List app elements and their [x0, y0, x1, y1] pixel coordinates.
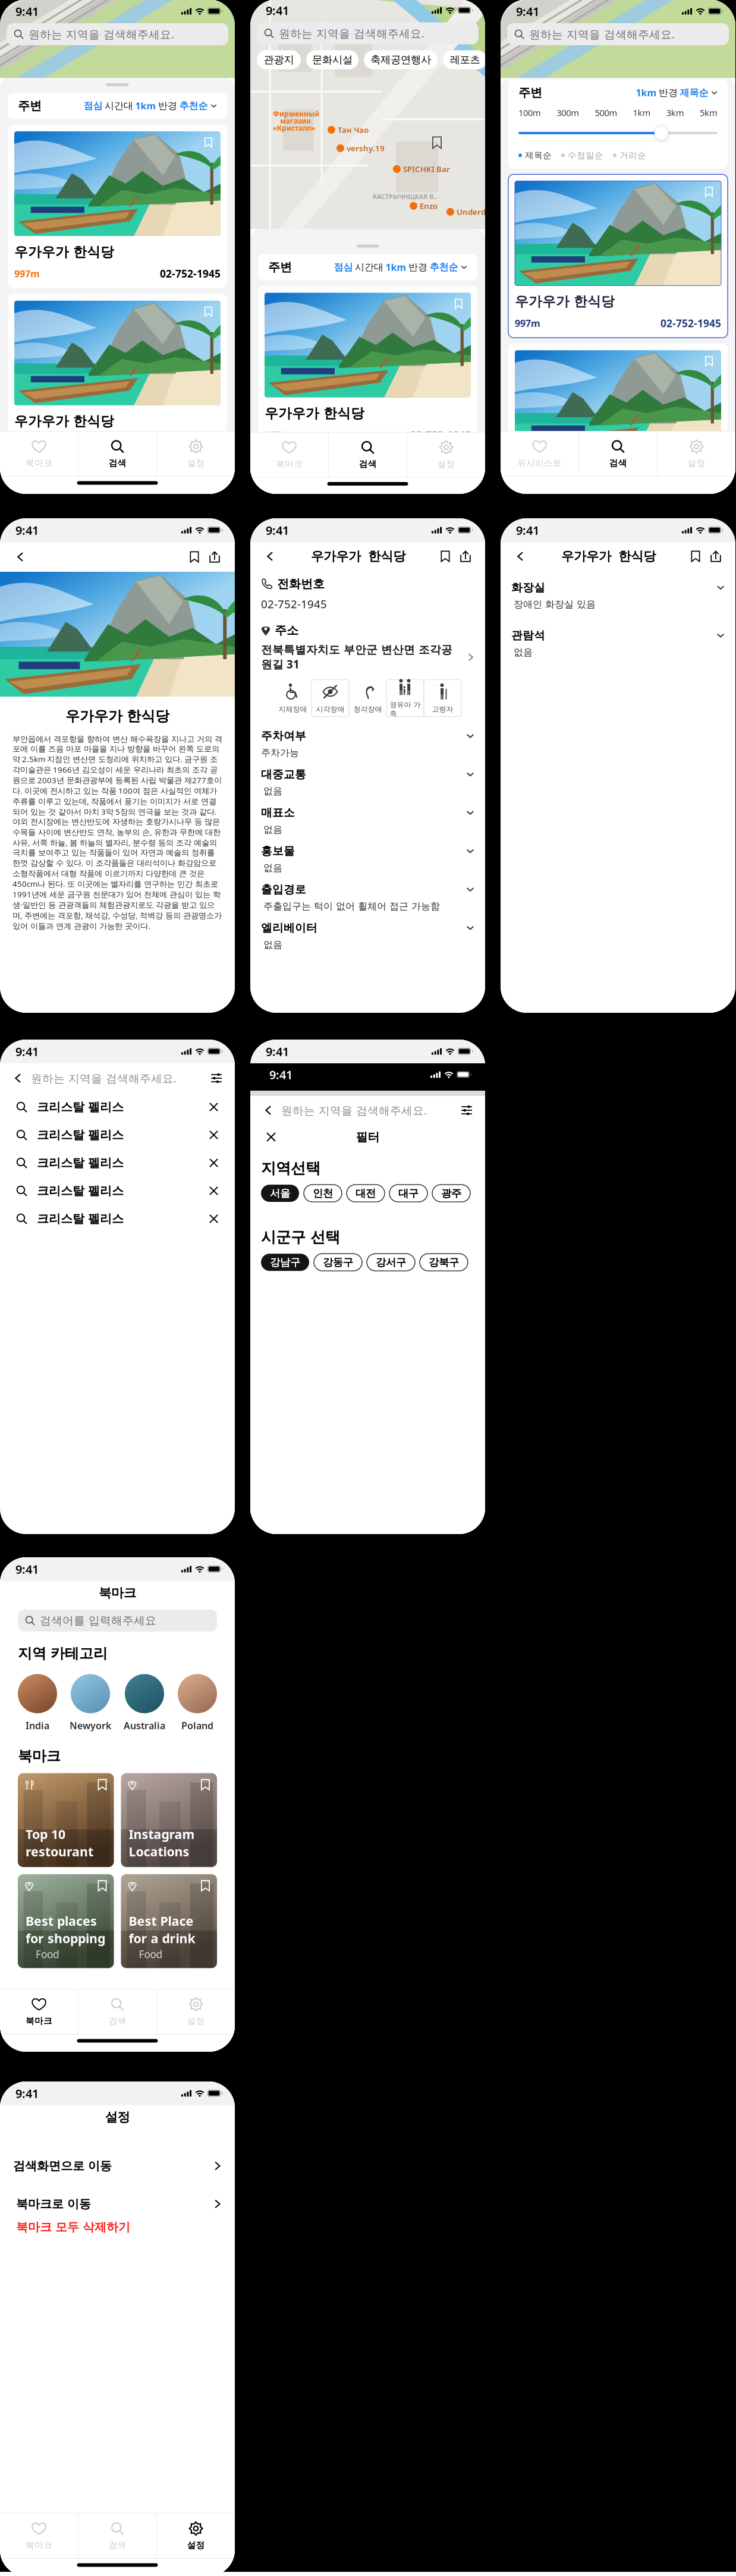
button[interactable]: 우가우가 한식당 [508, 344, 728, 507]
button[interactable]: 출입경로 [250, 876, 485, 914]
staticText: 997m [14, 437, 40, 449]
staticText: 9:41 [266, 2, 289, 18]
button[interactable]: Poland [178, 1674, 217, 1732]
staticText: Best Place [129, 1912, 194, 1929]
button[interactable]: 관광지 [257, 50, 301, 69]
button[interactable]: 문화시설 [306, 50, 358, 69]
button[interactable]: Best places [18, 1874, 114, 1968]
button[interactable]: 검색 [78, 432, 156, 476]
staticText: vershy.19 [347, 143, 385, 153]
button[interactable]: Newyork [70, 1674, 111, 1732]
button[interactable]: India [18, 1674, 57, 1732]
staticText: КАСТРЫЧНIЦКАЯ В.. [373, 192, 437, 201]
button[interactable]: Back [10, 544, 32, 570]
staticText: 설정 [187, 458, 205, 468]
button[interactable]: 북마크 [0, 432, 78, 476]
button[interactable]: Close [261, 1125, 281, 1149]
staticText: 북마크 [276, 459, 303, 469]
button[interactable]: 우가우가 한식당 [508, 174, 728, 338]
button[interactable]: 검색 [579, 432, 657, 476]
button[interactable]: 설정 [657, 432, 735, 476]
button[interactable]: 홍보물 [250, 838, 485, 876]
button[interactable]: 우가우가 한식당 [8, 294, 227, 458]
button[interactable]: 북마크 [250, 432, 328, 477]
button[interactable]: Back [510, 544, 531, 568]
staticText: 대중교통 [261, 767, 306, 781]
button[interactable]: 설정 [157, 2514, 235, 2558]
button[interactable]: 대전 [347, 1185, 385, 1202]
button[interactable]: 축제공연행사 [364, 50, 438, 69]
button[interactable]: 크리스탈 펠리스 [0, 1093, 235, 1121]
button[interactable]: 북마크 모두 삭제하기 [0, 2217, 235, 2237]
button[interactable]: 엘리베이터 [250, 914, 485, 953]
staticText: 9:41 [516, 522, 539, 538]
button[interactable]: 위시리스트 [501, 432, 579, 476]
staticText: 997m [265, 429, 290, 441]
button[interactable]: 서울 [261, 1185, 299, 1202]
button[interactable]: 설정 [407, 432, 485, 477]
button[interactable]: Bookmark [435, 544, 455, 568]
staticText: 주변 [18, 98, 42, 113]
button[interactable]: 대중교통 [250, 761, 485, 799]
button[interactable]: Share [455, 544, 476, 568]
button[interactable]: Filter [207, 1065, 225, 1091]
button[interactable]: 관람석 [501, 622, 735, 660]
button[interactable]: 크리스탈 펠리스 [0, 1149, 235, 1177]
button[interactable]: Instagram [121, 1773, 217, 1867]
button[interactable]: 우가우가 한식당 [258, 286, 477, 450]
button[interactable]: 검색 [329, 432, 407, 477]
button[interactable]: 강동구 [314, 1254, 362, 1271]
button[interactable]: 주차여부 [250, 723, 485, 761]
button[interactable]: 검색 [78, 2514, 156, 2558]
button[interactable]: 크리스탈 펠리스 [0, 1121, 235, 1149]
staticText: 북마크 모두 삭제하기 [16, 2220, 130, 2234]
staticText: 원하는 지역을 검색해주세요. [281, 1103, 427, 1118]
staticText: 997m [515, 317, 540, 329]
staticText: 검색 [108, 2540, 126, 2551]
staticText: 검색화면으로 이동 [13, 2159, 112, 2173]
button[interactable]: 북마크 [0, 1989, 78, 2034]
staticText: 광주 [441, 1187, 461, 1200]
button[interactable]: 광주 [432, 1185, 470, 1202]
button[interactable]: Bookmark [184, 544, 205, 570]
button[interactable]: 우가우가 한식당 [8, 125, 227, 288]
button[interactable]: 강서구 [367, 1254, 415, 1271]
button[interactable]: Back [10, 1065, 27, 1091]
button[interactable]: 검색화면으로 이동 [0, 2153, 235, 2179]
button[interactable]: Share [706, 544, 726, 568]
button[interactable]: 검색 [78, 1989, 156, 2034]
button[interactable]: 북마크 [0, 2514, 78, 2558]
staticText: 우가우가 한식당 [515, 463, 615, 479]
button[interactable]: 대구 [389, 1185, 427, 1202]
button[interactable]: 강남구 [261, 1254, 309, 1271]
staticText: 없음 [514, 646, 533, 658]
button[interactable]: 레포츠 [443, 50, 487, 69]
staticText: 위시리스트 [517, 458, 562, 468]
button[interactable]: Filter [458, 1098, 476, 1123]
button[interactable]: Share [205, 544, 225, 570]
button[interactable]: 설정 [157, 1989, 235, 2034]
button[interactable]: 북마크로 이동 [0, 2191, 235, 2217]
staticText: 설정 [688, 458, 705, 468]
button[interactable]: 크리스탈 펠리스 [0, 1177, 235, 1205]
button[interactable]: Top 10 [18, 1773, 114, 1867]
button[interactable]: 크리스탈 펠리스 [0, 1205, 235, 1233]
staticText: 02-752-1945 [160, 436, 221, 450]
staticText: 북마크 [26, 2016, 52, 2026]
button[interactable]: 인천 [304, 1185, 342, 1202]
button[interactable]: 설정 [157, 432, 235, 476]
button[interactable]: 강북구 [420, 1254, 468, 1271]
staticText: магазин [280, 116, 311, 126]
button[interactable]: Best Place [121, 1874, 217, 1968]
button[interactable]: 매표소 [250, 799, 485, 838]
staticText: 검색 [108, 458, 126, 468]
button[interactable]: Bookmark [685, 544, 706, 568]
button[interactable]: Australia [124, 1674, 165, 1732]
button[interactable]: 화장실 [501, 574, 735, 613]
button[interactable]: Back [260, 1098, 278, 1123]
staticText: 강북구 [429, 1256, 459, 1269]
staticText: 관광지 [264, 53, 294, 66]
staticText: 수정일순 [568, 150, 603, 161]
button[interactable]: Back [260, 544, 281, 568]
staticText: 부안읍에서 격포항을 향하여 변산 해수욕장을 지나고 거의 격포에 이를 즈음… [12, 734, 222, 931]
